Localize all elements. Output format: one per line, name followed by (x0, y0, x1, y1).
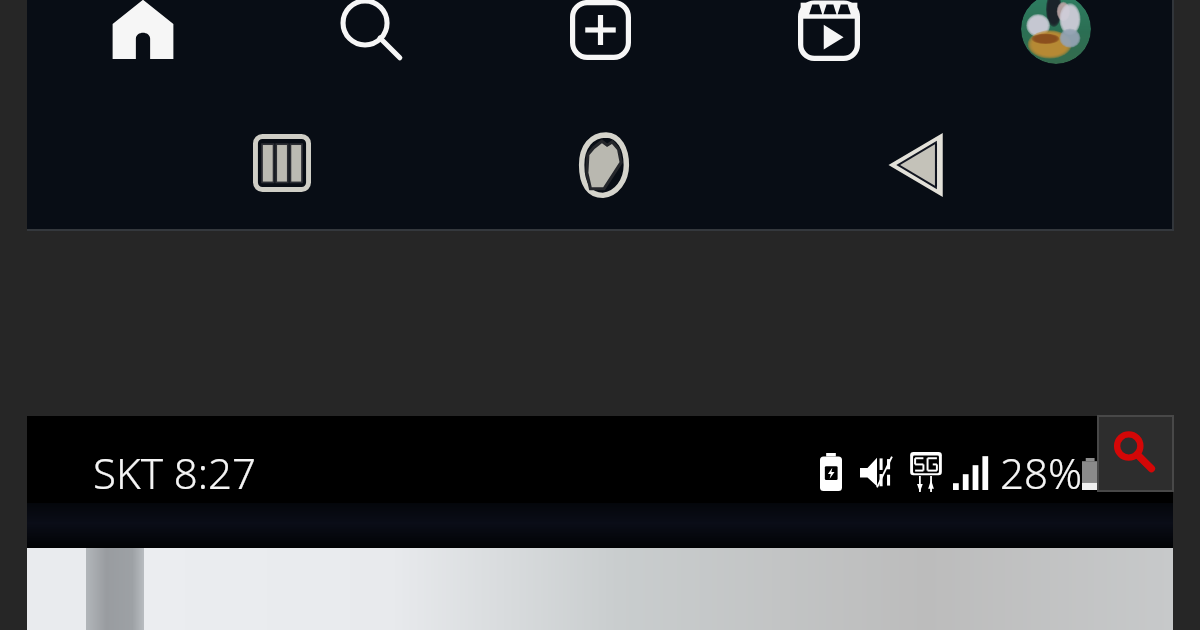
button[interactable]: Home (108, 0, 178, 80)
button[interactable]: Reels (792, 0, 866, 80)
button[interactable]: Search (1098, 416, 1173, 491)
staticText: 28% (1000, 444, 1083, 501)
button[interactable]: Recent apps (246, 127, 318, 199)
button[interactable]: Back (881, 129, 953, 201)
button[interactable]: Search (332, 0, 406, 80)
staticText: SKT 8:27 (93, 444, 257, 501)
button[interactable]: Home (567, 128, 639, 200)
button[interactable]: Create (564, 0, 636, 80)
button[interactable]: Profile (1021, 0, 1091, 64)
